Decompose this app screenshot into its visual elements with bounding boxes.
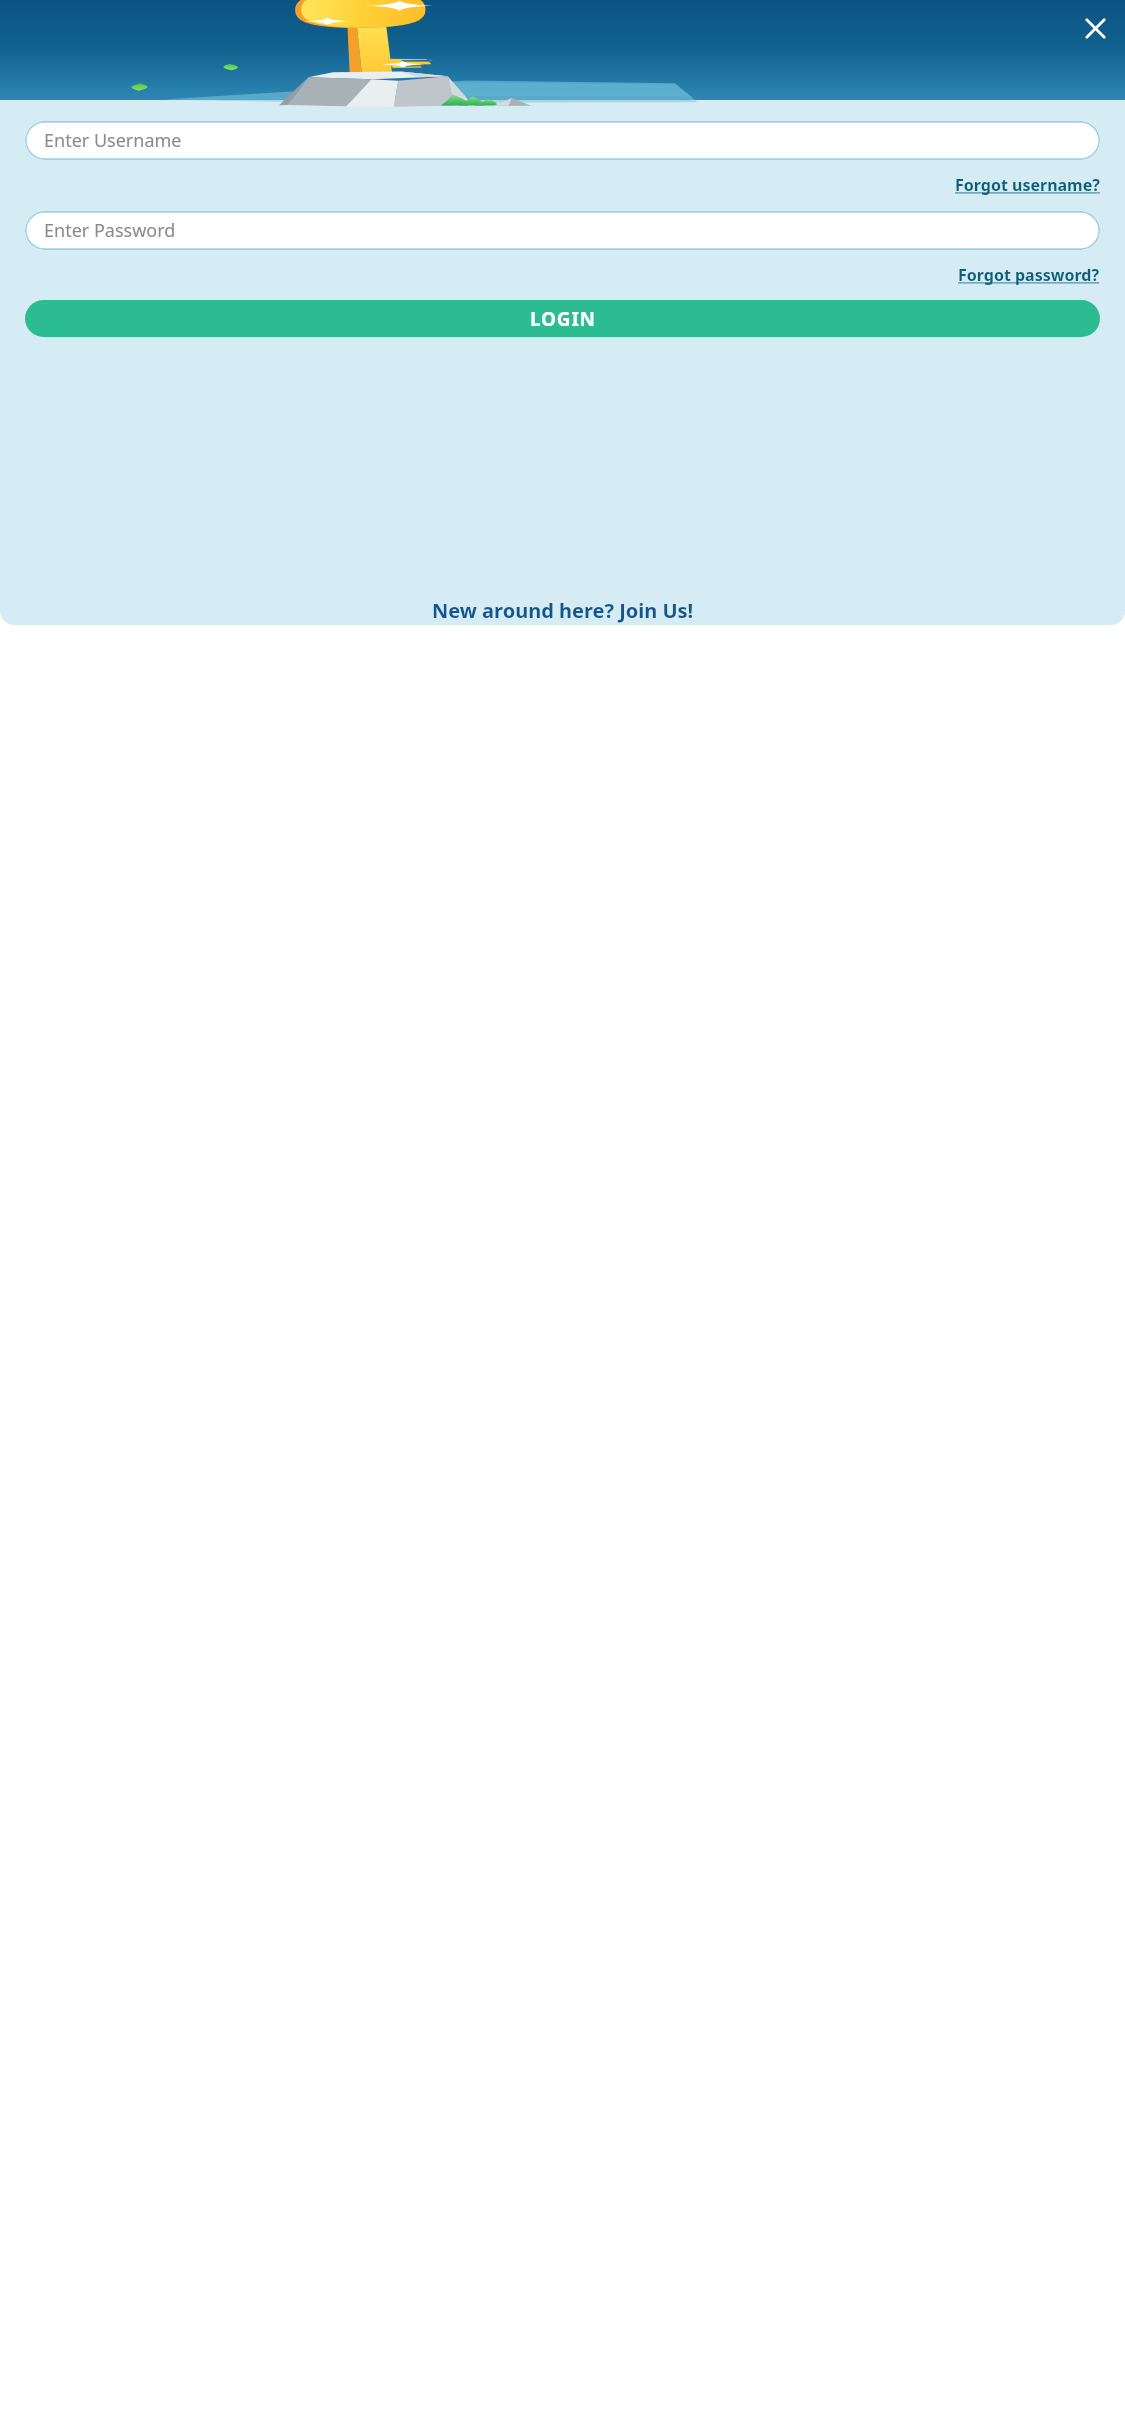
- staticText: New around here? Join Us!: [432, 597, 694, 624]
- button[interactable]: Forgot password?: [958, 264, 1100, 286]
- button[interactable]: Close: [1072, 5, 1118, 51]
- button[interactable]: New around here? Join Us!: [0, 593, 1125, 627]
- staticText: LOGIN: [530, 306, 596, 332]
- button[interactable]: Enter Username: [25, 121, 1100, 160]
- button[interactable]: Enter Password: [25, 211, 1100, 250]
- button[interactable]: LOGIN: [25, 300, 1100, 337]
- staticText: Forgot username?: [955, 174, 1100, 196]
- button[interactable]: Forgot username?: [955, 174, 1100, 196]
- staticText: Enter Username: [44, 128, 182, 153]
- staticText: Forgot password?: [958, 264, 1100, 286]
- staticText: Enter Password: [44, 218, 176, 243]
